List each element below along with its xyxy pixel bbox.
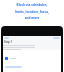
staticText: Block via schedules, limits, location, f… [1, 3, 63, 20]
staticText: Step 1 [4, 40, 12, 44]
